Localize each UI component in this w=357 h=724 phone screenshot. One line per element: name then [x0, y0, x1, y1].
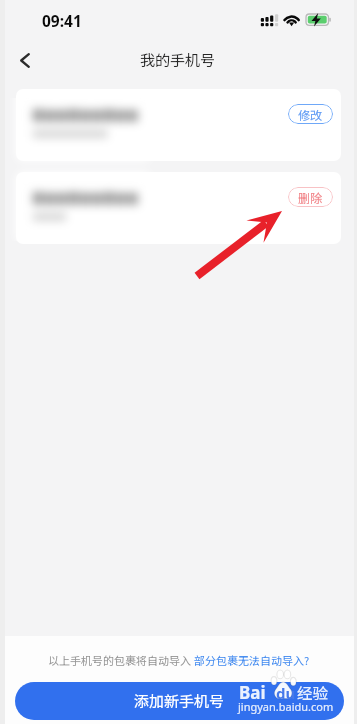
button[interactable]: 修改	[16, 89, 341, 161]
button[interactable]: 修改	[288, 104, 333, 124]
staticText: 09:41	[42, 10, 82, 31]
button[interactable]: 部分包裹无法自动导入?	[194, 652, 310, 668]
staticText: jingyan.baidu.com	[238, 699, 334, 714]
staticText: du	[276, 683, 296, 703]
staticText: 经验	[297, 681, 329, 703]
button[interactable]: 删除	[288, 187, 333, 207]
button[interactable]	[16, 98, 151, 161]
staticText: 修改	[298, 106, 323, 123]
staticText: 添加新手机号	[134, 690, 225, 712]
button[interactable]	[16, 172, 151, 241]
staticText: Bai	[239, 681, 266, 704]
button[interactable]: Back	[5, 40, 45, 80]
staticText: 我的手机号	[140, 49, 216, 71]
button[interactable]: 删除	[16, 172, 341, 244]
staticText: 以上手机号的包裹将自动导入	[48, 652, 194, 668]
button[interactable]: 添加新手机号	[15, 682, 344, 720]
staticText: 删除	[298, 189, 323, 206]
